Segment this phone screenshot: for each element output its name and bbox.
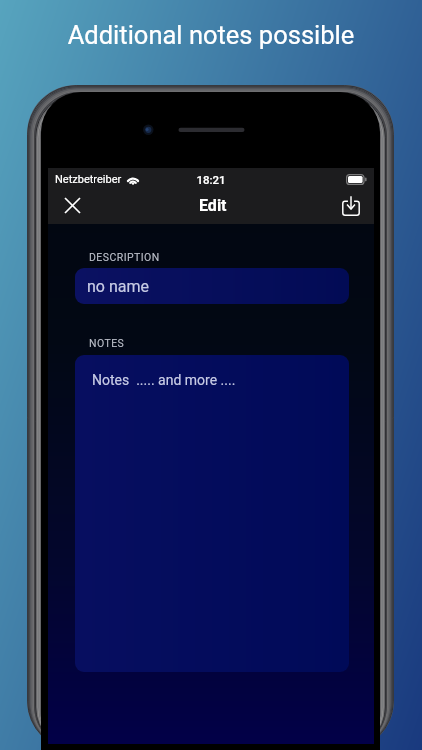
staticText: no name: [87, 277, 149, 296]
staticText: Edit: [199, 196, 227, 215]
staticText: 18:21: [48, 173, 374, 186]
button[interactable]: Close: [48, 190, 96, 224]
button[interactable]: Save: [330, 190, 374, 224]
staticText: Netzbetreiber: [55, 173, 122, 186]
button[interactable]: no name: [75, 268, 349, 304]
staticText: NOTES: [89, 337, 125, 349]
staticText: Notes ..... and more ....: [92, 372, 236, 388]
staticText: DESCRIPTION: [89, 251, 160, 263]
button[interactable]: Notes ..... and more ....: [75, 355, 349, 672]
staticText: Additional notes possible: [0, 20, 422, 50]
